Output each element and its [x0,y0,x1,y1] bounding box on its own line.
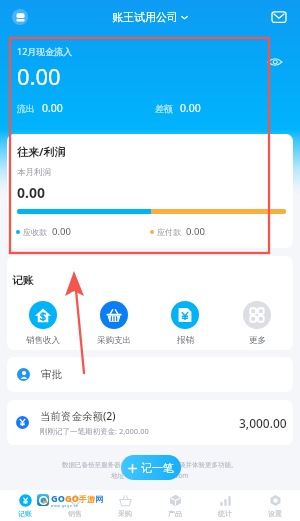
button[interactable]: 设置 [250,490,300,521]
staticText: 流出 [17,103,35,114]
button[interactable]: 更多 [221,301,293,346]
staticText: GO [65,492,79,504]
button[interactable]: 采购 [100,490,150,521]
staticText: 销售收入 [26,335,60,346]
staticText: 记账 [12,274,33,287]
button[interactable]: 产品 [150,490,200,521]
staticText: 销售 [68,509,82,518]
staticText: 0.00 [186,225,205,238]
staticText: 统计 [218,509,232,518]
staticText: 采购支出 [97,335,131,346]
staticText: 产品 [168,509,182,518]
button[interactable]: 审批 [7,357,293,392]
staticText: 3,000.00 [239,415,287,431]
staticText: 账王试用公司 [112,10,178,24]
staticText: 往来/利润 [17,144,66,159]
staticText: 刚刚记了一笔期初资金: 2,000.00 [40,426,149,436]
staticText: 手游 [79,494,95,504]
staticText: 本月利润 [17,167,51,178]
button[interactable]: 统计 [200,490,250,521]
staticText: 0.00 [17,183,45,202]
staticText: 记账 [18,509,32,518]
button[interactable]: Messages [269,7,289,27]
button[interactable]: 账王试用公司 [112,10,188,24]
staticText: 0.00 [52,225,71,238]
staticText: 设置 [268,509,282,518]
staticText: 更多 [249,335,266,346]
staticText: w w w . g o g o . c n [51,504,79,508]
staticText: 0.00 [42,101,63,115]
staticText: 报销 [177,335,194,346]
button[interactable]: 当前资金余额(2) [7,400,293,445]
staticText: 地址：www.example.com [111,471,189,480]
button[interactable]: 报销 [149,301,221,346]
staticText: 应付款 [157,227,181,237]
staticText: 记一笔 [141,461,174,475]
button[interactable]: Profile [12,9,28,25]
staticText: 0.00 [17,61,61,91]
button[interactable]: 采购支出 [78,301,149,346]
button[interactable]: Toggle amount visibility [266,53,284,71]
staticText: 差额 [155,103,173,114]
staticText: 采购 [118,509,132,518]
staticText: 0.00 [180,101,201,115]
button[interactable]: 记账 [0,490,50,521]
staticText: 12月现金流入 [17,45,73,57]
staticText: 网 [95,494,103,504]
staticText: GO [51,492,65,504]
staticText: 当前资金余额(2) [40,409,116,423]
button[interactable]: 销售收入 [7,301,78,346]
staticText: 数据已备份至服务器，随时随地查账，升级并体验更多功能。 [62,461,238,469]
staticText: 审批 [41,368,62,381]
button[interactable]: 记一笔 [121,455,181,480]
staticText: 应收款 [23,227,47,237]
button[interactable]: 销售 [50,490,100,521]
